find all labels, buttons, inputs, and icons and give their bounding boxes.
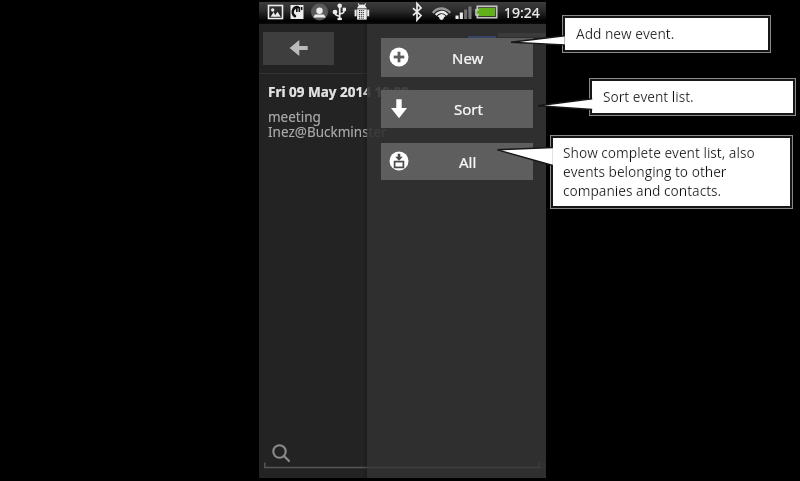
button[interactable]: New <box>381 38 533 77</box>
button[interactable]: All <box>381 143 533 180</box>
staticText: meeting <box>268 108 321 126</box>
button[interactable]: Sort <box>381 90 533 128</box>
staticText: Sort event list. <box>603 87 694 106</box>
staticText: Sort <box>454 99 483 119</box>
staticText: Add new event. <box>576 24 675 43</box>
staticText: Inez@Buckminster <box>268 123 387 141</box>
staticText: events belonging to other <box>563 162 727 181</box>
staticText: Show complete event list, also <box>563 143 755 162</box>
staticText: All <box>459 152 477 172</box>
staticText: New <box>452 48 484 68</box>
button[interactable]: Back <box>263 32 334 65</box>
button[interactable]: Search <box>271 443 293 465</box>
staticText: companies and contacts. <box>563 181 722 200</box>
staticText: Fri 09 May 2014 10:00 <box>268 83 410 101</box>
staticText: 19:24 <box>504 3 540 22</box>
